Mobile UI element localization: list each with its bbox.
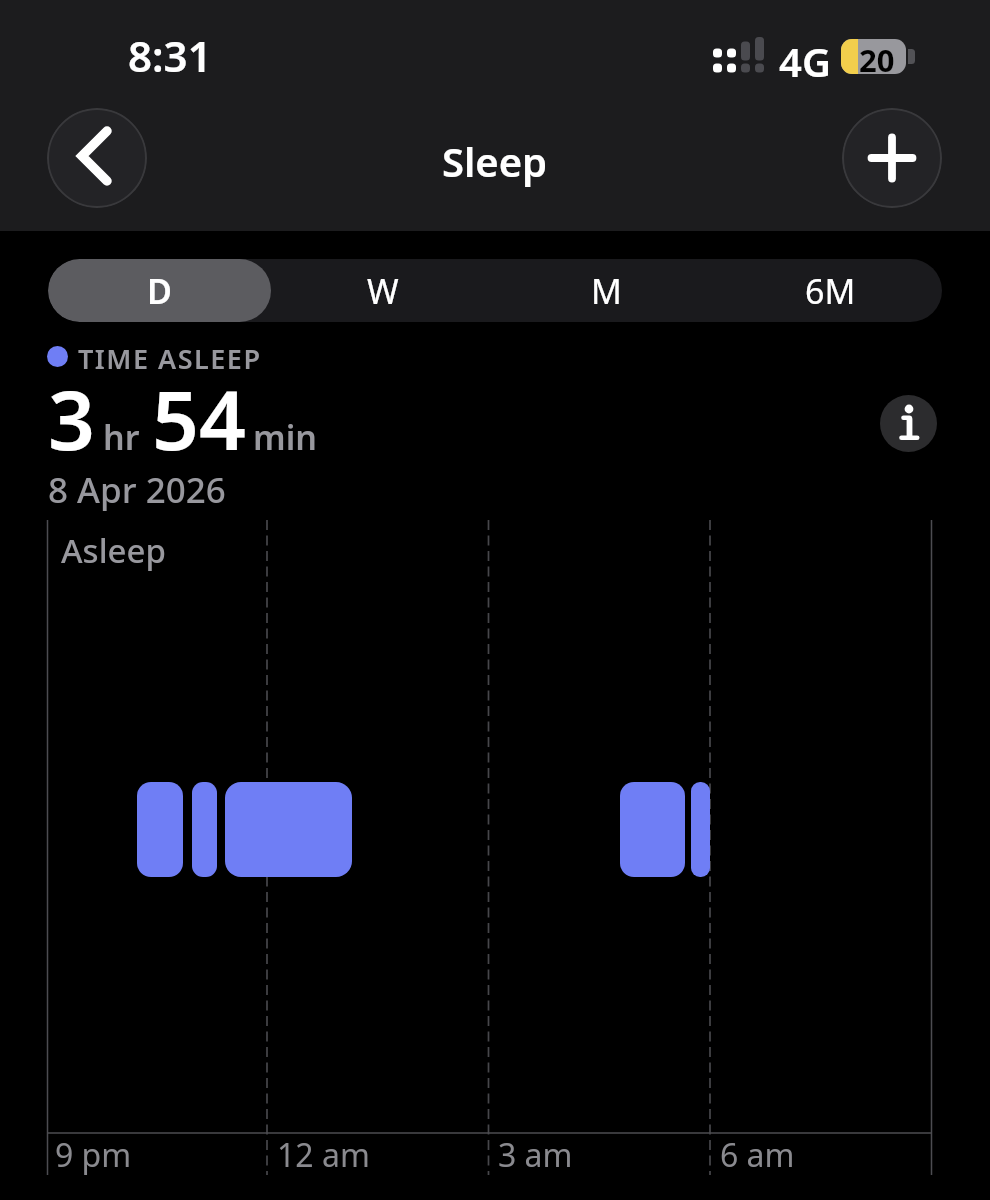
staticText: min (253, 414, 317, 460)
staticText: W (367, 268, 399, 314)
staticText: 9 pm (55, 1133, 132, 1177)
button[interactable] (842, 108, 942, 208)
staticText: 4G (779, 34, 831, 88)
button[interactable]: M (494, 259, 718, 322)
staticText: 3 (48, 362, 95, 474)
staticText: M (591, 268, 622, 314)
staticText: 3 am (498, 1133, 573, 1177)
staticText: Sleep (442, 134, 548, 188)
staticText: hr (103, 414, 140, 460)
staticText: TIME ASLEEP (78, 340, 262, 377)
button[interactable]: W (271, 259, 494, 322)
staticText: D (147, 268, 172, 314)
staticText: 12 am (277, 1133, 370, 1177)
staticText: Asleep (61, 528, 166, 573)
button[interactable] (880, 395, 937, 452)
button[interactable] (47, 108, 147, 208)
staticText: 8:31 (128, 27, 212, 84)
button[interactable]: 6M (718, 259, 942, 322)
staticText: 54 (152, 362, 246, 474)
staticText: 20 (859, 39, 895, 74)
staticText: 6 am (720, 1133, 795, 1177)
button[interactable]: D (48, 259, 271, 322)
staticText: 8 Apr 2026 (48, 466, 226, 514)
staticText: 6M (805, 268, 856, 314)
